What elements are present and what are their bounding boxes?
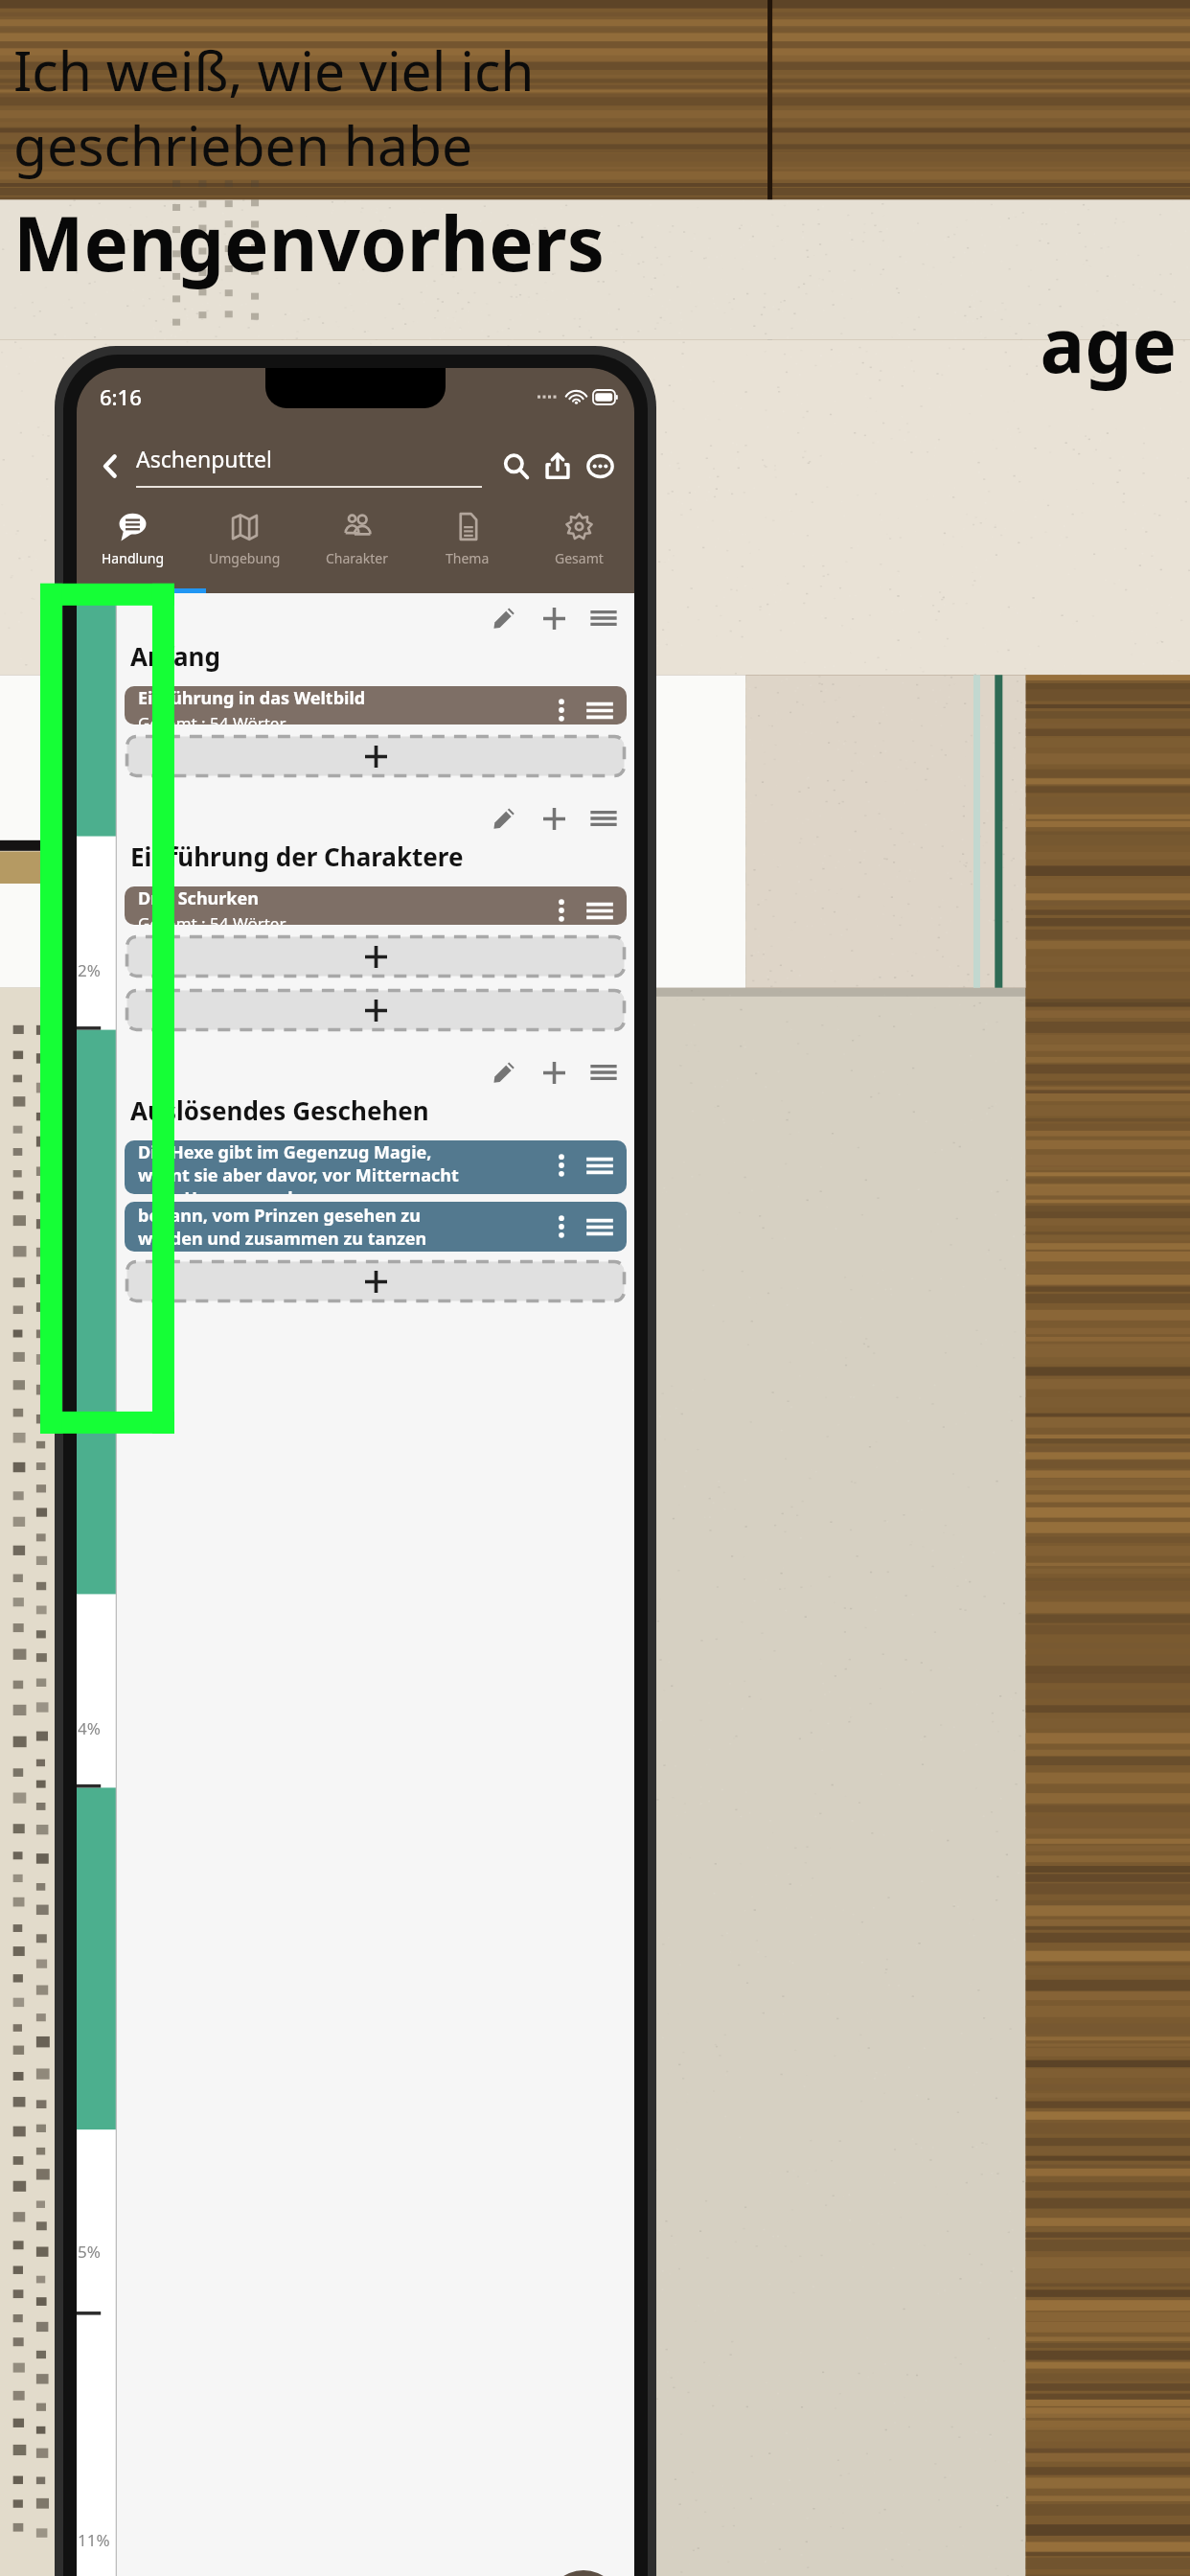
staticText: age <box>13 293 1177 395</box>
staticText: Einführung in das Weltbild <box>138 686 366 710</box>
staticText: Gesamt <box>555 549 604 567</box>
staticText: 2% <box>78 959 101 981</box>
staticText: 6:16 <box>100 382 142 411</box>
button[interactable]: Thema <box>412 512 523 585</box>
staticText: Gesamt : 54 Wörter <box>138 712 286 724</box>
button[interactable]: Charakter <box>301 512 412 585</box>
button[interactable]: Umgebung <box>189 512 301 585</box>
staticText: geschrieben habe <box>13 107 473 182</box>
staticText: Aschenputtel <box>136 444 273 473</box>
button[interactable]: Add item <box>125 734 627 778</box>
button[interactable]: More options <box>579 445 621 487</box>
staticText: Gesamt : 54 Wörter <box>138 912 286 925</box>
staticText: Ich weiß, wie viel ich <box>13 33 535 107</box>
staticText: begann, vom Prinzen gesehen zu werden un… <box>138 1204 427 1250</box>
staticText: Drei Schurken <box>138 886 259 910</box>
button[interactable]: Card menu <box>548 1213 575 1240</box>
button[interactable]: Reorder <box>584 599 623 637</box>
button[interactable]: Add <box>535 1053 573 1092</box>
staticText: Thema <box>446 549 490 567</box>
button[interactable]: Die Hexe gibt im Gegenzug Magie, warnt s… <box>125 1140 627 1194</box>
button[interactable]: Add item <box>125 1259 627 1303</box>
button[interactable]: Gesamt <box>523 512 634 585</box>
button[interactable]: Reorder <box>584 799 623 838</box>
button[interactable]: Edit <box>485 1053 523 1092</box>
staticText: 11% <box>78 2529 110 2551</box>
button[interactable]: Drag handle <box>584 1150 615 1181</box>
staticText: Mengenvorhers <box>13 192 1182 293</box>
button[interactable]: Drag handle <box>584 896 615 925</box>
button[interactable]: Einführung in das Weltbild <box>125 686 627 724</box>
button[interactable]: Card menu <box>548 697 575 724</box>
staticText: Einführung der Charaktere <box>130 839 464 873</box>
staticText: Charakter <box>326 549 388 567</box>
button[interactable]: Drag handle <box>584 1211 615 1242</box>
staticText: Anfang <box>130 639 220 673</box>
button[interactable]: Card menu <box>548 1152 575 1179</box>
button[interactable]: Edit <box>485 799 523 838</box>
button[interactable]: Drei Schurken <box>125 886 627 925</box>
staticText: Die Hexe gibt im Gegenzug Magie, warnt s… <box>138 1140 459 1194</box>
staticText: Handlung <box>102 549 165 567</box>
button[interactable]: Card menu <box>548 897 575 924</box>
button[interactable]: Back <box>88 444 132 488</box>
button[interactable]: Reorder <box>584 1053 623 1092</box>
staticText: 4% <box>78 1717 101 1739</box>
button[interactable]: Handlung <box>77 512 189 585</box>
button[interactable]: begann, vom Prinzen gesehen zu werden un… <box>125 1202 627 1252</box>
button[interactable]: Add item <box>125 934 627 978</box>
button[interactable]: Aschenputtel <box>136 444 489 488</box>
button[interactable]: Add <box>535 799 573 838</box>
button[interactable]: Edit <box>485 599 523 637</box>
button[interactable]: Search <box>494 445 537 487</box>
staticText: Umgebung <box>209 549 281 567</box>
button[interactable]: Add item <box>125 988 627 1032</box>
button[interactable]: Menu <box>546 2570 621 2576</box>
button[interactable]: Share <box>537 445 579 487</box>
staticText: 5% <box>78 2241 101 2263</box>
staticText: Auslösendes Geschehen <box>130 1093 429 1127</box>
button[interactable]: Drag handle <box>584 696 615 724</box>
button[interactable]: Add <box>535 599 573 637</box>
